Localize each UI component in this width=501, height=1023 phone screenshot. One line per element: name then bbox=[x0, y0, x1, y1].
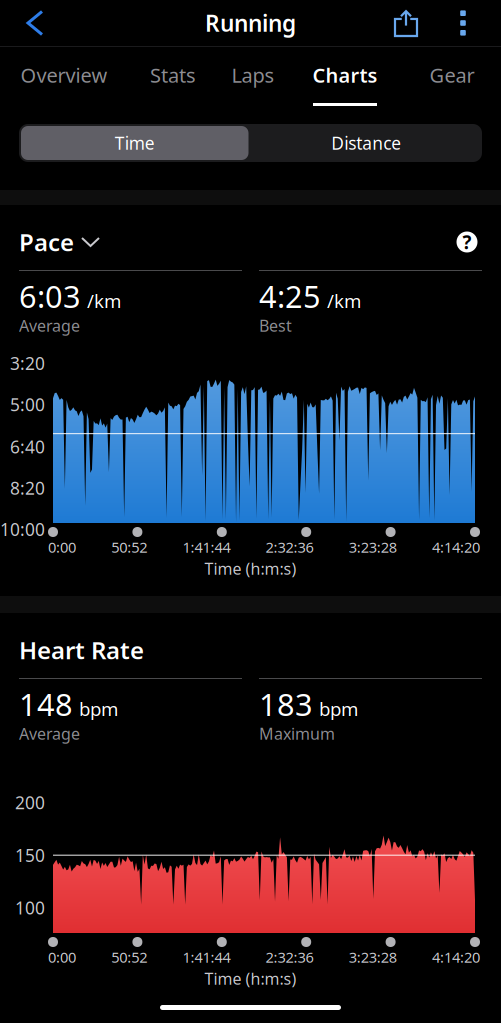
staticText: Overview bbox=[20, 62, 107, 88]
staticText: 1:41:44 bbox=[182, 537, 230, 557]
staticText: Heart Rate bbox=[19, 634, 144, 666]
staticText: Time (h:m:s) bbox=[204, 968, 296, 989]
staticText: Maximum bbox=[259, 723, 335, 744]
staticText: Pace bbox=[19, 226, 74, 258]
button[interactable]: Distance bbox=[250, 124, 482, 162]
staticText: /km bbox=[327, 288, 361, 313]
staticText: Charts bbox=[312, 62, 377, 88]
button[interactable]: More options bbox=[442, 0, 484, 46]
staticText: bpm bbox=[79, 696, 118, 721]
staticText: Stats bbox=[150, 62, 196, 88]
staticText: Time (h:m:s) bbox=[204, 558, 296, 579]
staticText: 4:14:20 bbox=[432, 947, 480, 967]
button[interactable]: Gear bbox=[419, 47, 485, 106]
staticText: 4:14:20 bbox=[432, 537, 480, 557]
button[interactable]: Help bbox=[452, 227, 482, 257]
staticText: Gear bbox=[429, 62, 474, 88]
button[interactable]: Overview bbox=[11, 47, 117, 106]
staticText: ? bbox=[462, 230, 471, 254]
staticText: 0:00 bbox=[48, 947, 76, 967]
staticText: 200 bbox=[15, 791, 45, 814]
staticText: 5:00 bbox=[10, 393, 45, 416]
staticText: 8:20 bbox=[10, 476, 45, 499]
staticText: 150 bbox=[15, 844, 45, 867]
button[interactable]: Laps bbox=[221, 47, 285, 106]
staticText: Running bbox=[205, 8, 296, 38]
staticText: Time bbox=[115, 131, 155, 154]
staticText: Distance bbox=[331, 131, 401, 154]
staticText: 183 bbox=[259, 684, 313, 724]
staticText: 3:20 bbox=[10, 352, 45, 375]
staticText: /km bbox=[87, 288, 121, 313]
staticText: 50:52 bbox=[111, 947, 147, 967]
button[interactable]: Stats bbox=[139, 47, 207, 106]
staticText: 50:52 bbox=[111, 537, 147, 557]
staticText: 2:32:36 bbox=[266, 947, 314, 967]
staticText: 6:40 bbox=[10, 435, 45, 458]
button[interactable]: Change metric bbox=[74, 229, 107, 255]
staticText: 4:25 bbox=[259, 276, 321, 316]
staticText: 2:32:36 bbox=[266, 537, 314, 557]
button[interactable]: Time bbox=[19, 124, 250, 162]
staticText: 1:41:44 bbox=[182, 947, 230, 967]
staticText: 148 bbox=[19, 684, 73, 724]
staticText: 10:00 bbox=[0, 518, 45, 541]
button[interactable]: Share bbox=[383, 0, 429, 46]
staticText: bpm bbox=[319, 696, 358, 721]
staticText: 0:00 bbox=[48, 537, 76, 557]
staticText: Average bbox=[19, 723, 80, 744]
staticText: Average bbox=[19, 315, 80, 336]
button[interactable]: Back bbox=[7, 0, 63, 46]
button[interactable]: Charts bbox=[302, 47, 388, 106]
staticText: 3:23:28 bbox=[349, 537, 397, 557]
staticText: 6:03 bbox=[19, 276, 81, 316]
staticText: Best bbox=[259, 315, 292, 336]
staticText: 100 bbox=[15, 896, 45, 919]
staticText: 3:23:28 bbox=[349, 947, 397, 967]
staticText: Laps bbox=[231, 62, 274, 88]
